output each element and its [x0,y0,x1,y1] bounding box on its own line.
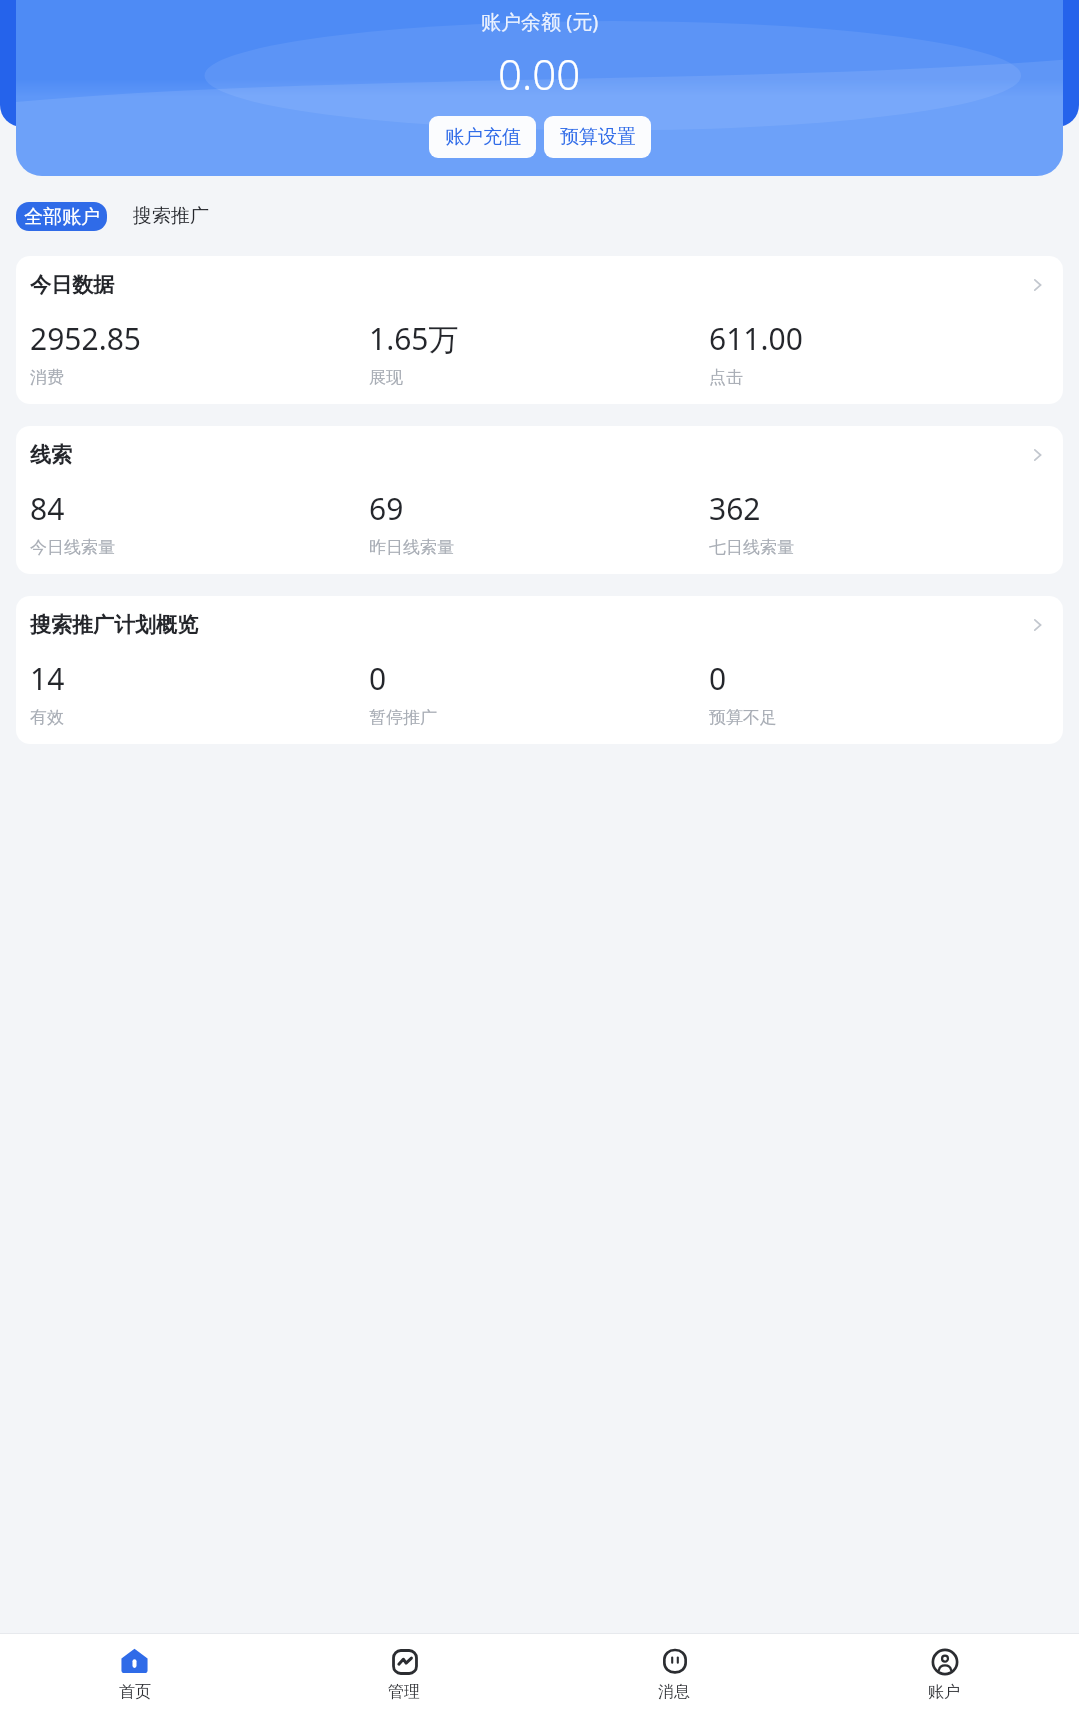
staticText: 账户充值 [445,125,521,149]
staticText: 0 [369,658,387,699]
staticText: 预算不足 [709,707,777,728]
staticText: 账户 [928,1682,960,1702]
button[interactable]: 线索 [16,426,1063,574]
staticText: 0 [709,658,727,699]
staticText: 1.65万 [369,318,459,359]
staticText: 14 [30,658,65,699]
staticText: 首页 [119,1682,151,1702]
button[interactable]: 消息 [539,1634,809,1714]
staticText: 展现 [369,367,403,388]
staticText: 今日线索量 [30,537,115,558]
staticText: 点击 [709,367,743,388]
button[interactable]: 全部账户 [16,202,107,231]
staticText: 全部账户 [24,205,100,229]
button[interactable]: 首页 [0,1634,269,1714]
staticText: 2952.85 [30,318,141,359]
button[interactable]: 预算设置 [544,116,651,158]
staticText: 搜索推广 [133,204,209,228]
staticText: 线索 [30,442,72,468]
staticText: 预算设置 [560,125,636,149]
staticText: 昨日线索量 [369,537,454,558]
staticText: 消息 [658,1682,690,1702]
staticText: 有效 [30,707,64,728]
button[interactable]: 账户充值 [429,116,536,158]
button[interactable]: 搜索推广 [107,198,235,234]
button[interactable]: 账户 [809,1634,1079,1714]
button[interactable]: 今日数据 [16,256,1063,404]
staticText: 84 [30,488,65,529]
button[interactable]: 管理 [269,1634,539,1714]
staticText: 账户余额 (元) [481,8,599,35]
staticText: 69 [369,488,404,529]
staticText: 七日线索量 [709,537,794,558]
staticText: 0.00 [498,45,581,102]
staticText: 暂停推广 [369,707,437,728]
staticText: 611.00 [709,318,803,359]
staticText: 搜索推广计划概览 [30,612,198,638]
staticText: 管理 [388,1682,420,1702]
button[interactable]: 搜索推广计划概览 [16,596,1063,744]
staticText: 今日数据 [30,272,114,298]
staticText: 362 [709,488,761,529]
staticText: 消费 [30,367,64,388]
